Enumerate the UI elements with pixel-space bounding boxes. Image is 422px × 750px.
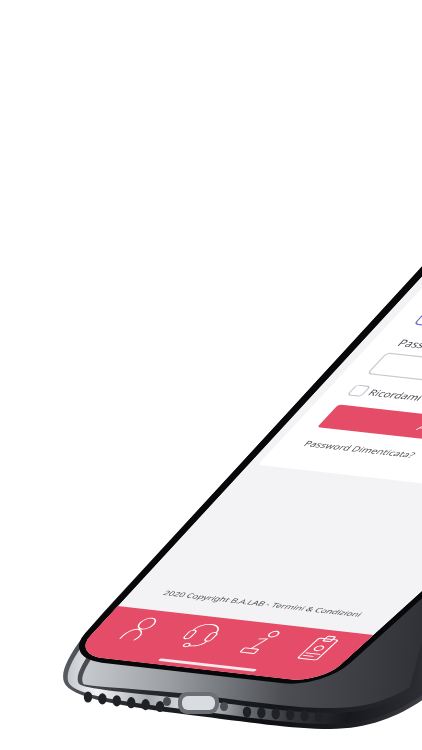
button[interactable] [0,0,422,750]
